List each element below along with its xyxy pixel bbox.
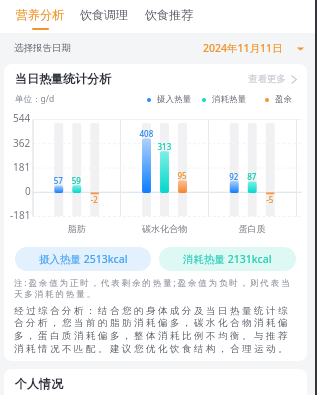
- staticText: 营养分析: [16, 7, 64, 22]
- button[interactable]: 饮食调理: [80, 0, 128, 28]
- button[interactable]: 查看更多: [248, 73, 297, 85]
- staticText: 注:盈余值为正时，代表剩余的热量;盈余值为负时，则代表当天多消耗的热量。: [14, 277, 300, 299]
- staticText: 经过综合分析：结合您的身体成分及当日热量统计综合分析，您当前的脂肪消耗偏多，碳水…: [14, 305, 300, 355]
- button[interactable]: 饮食推荐: [145, 0, 193, 28]
- button[interactable]: 摄入热量 2513kcal: [15, 247, 151, 271]
- staticText: 盈余: [275, 94, 292, 105]
- button[interactable]: 营养分析: [16, 0, 64, 30]
- staticText: 摄入热量 2513kcal: [39, 252, 128, 266]
- staticText: 选择报告日期: [14, 42, 71, 54]
- staticText: 摄入热量: [157, 94, 191, 105]
- staticText: 当日热量统计分析: [15, 71, 111, 86]
- other: Select date: [296, 44, 305, 53]
- staticText: 消耗热量 2131kcal: [183, 252, 272, 266]
- staticText: 个人情况: [15, 376, 63, 391]
- staticText: 消耗热量: [212, 94, 246, 105]
- staticText: 2024年11月11日: [203, 41, 283, 55]
- staticText: 单位：g/d: [15, 93, 55, 105]
- staticText: 查看更多: [248, 73, 286, 85]
- button[interactable]: 选择报告日期: [0, 33, 317, 63]
- staticText: 饮食推荐: [145, 7, 193, 22]
- button[interactable]: 消耗热量 2131kcal: [159, 247, 296, 271]
- staticText: 饮食调理: [80, 7, 128, 22]
